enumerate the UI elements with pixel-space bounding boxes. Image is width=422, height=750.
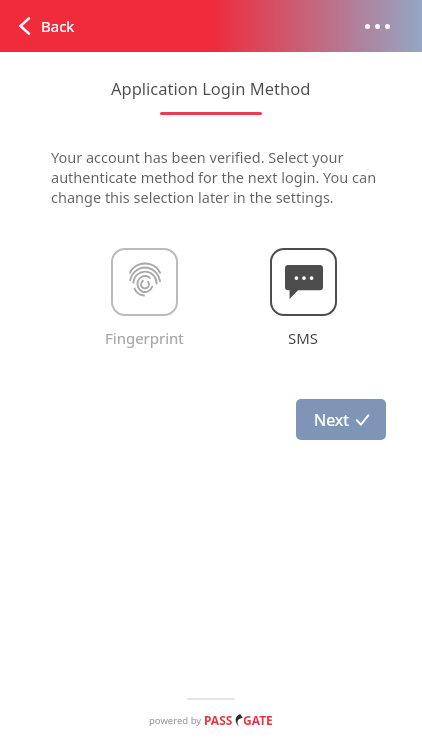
staticText: powered by bbox=[149, 714, 204, 727]
staticText: Fingerprint bbox=[105, 328, 184, 348]
button[interactable]: SMS login method bbox=[268, 246, 339, 350]
staticText: Next bbox=[314, 409, 350, 431]
button[interactable]: Back bbox=[14, 10, 79, 42]
staticText: SMS bbox=[288, 328, 319, 348]
staticText: Application Login Method bbox=[111, 77, 311, 99]
staticText: Back bbox=[41, 16, 75, 36]
button[interactable]: Next bbox=[296, 399, 386, 440]
button[interactable]: More options bbox=[359, 14, 396, 39]
button[interactable]: Fingerprint login method bbox=[103, 246, 186, 350]
staticText: Your account has been verified. Select y… bbox=[51, 147, 393, 207]
staticText: PASS bbox=[204, 712, 233, 728]
staticText: GATE bbox=[243, 712, 273, 728]
